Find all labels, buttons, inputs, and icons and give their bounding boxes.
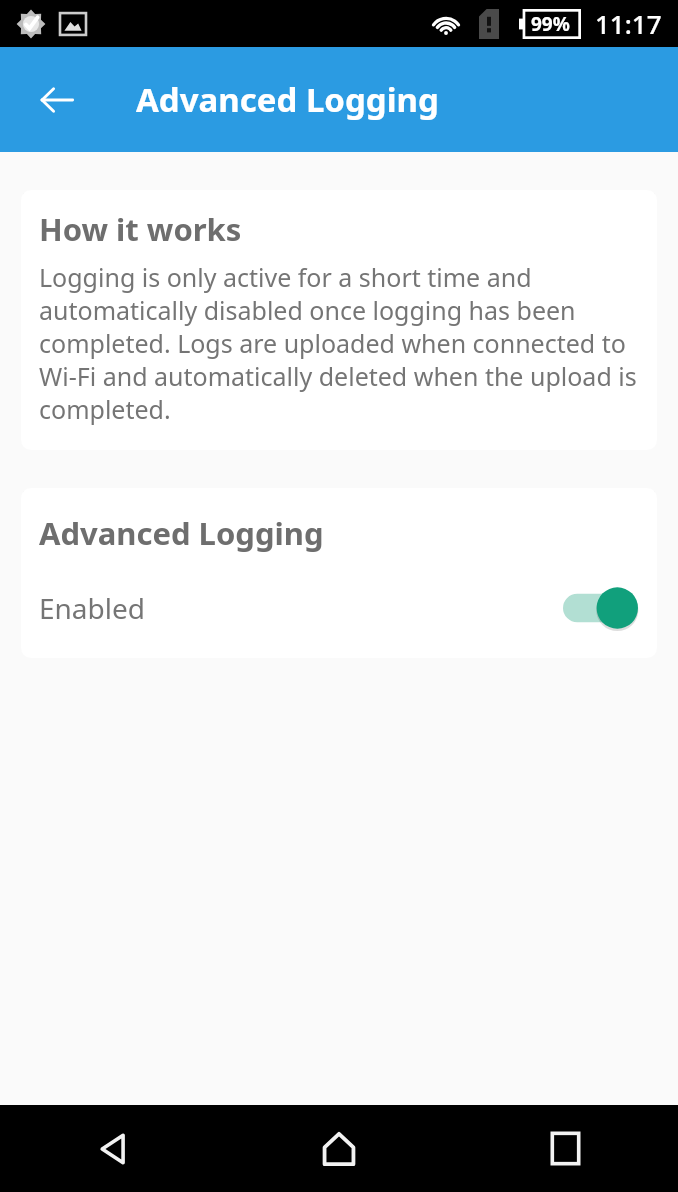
button[interactable]: Advanced Logging toggle, on [563,585,639,631]
staticText: Enabled [39,589,146,627]
button[interactable]: Recent apps [452,1105,678,1192]
button[interactable]: Back [22,65,92,135]
button[interactable]: Home [226,1105,452,1192]
staticText: How it works [39,208,242,250]
staticText: Advanced Logging [136,77,439,122]
button[interactable]: Back [0,1105,226,1192]
staticText: Logging is only active for a short time … [39,260,639,426]
staticText: 99% [531,11,570,37]
staticText: 11:17 [595,6,662,41]
button[interactable]: Enabled [39,580,639,636]
staticText: Advanced Logging [39,512,324,554]
